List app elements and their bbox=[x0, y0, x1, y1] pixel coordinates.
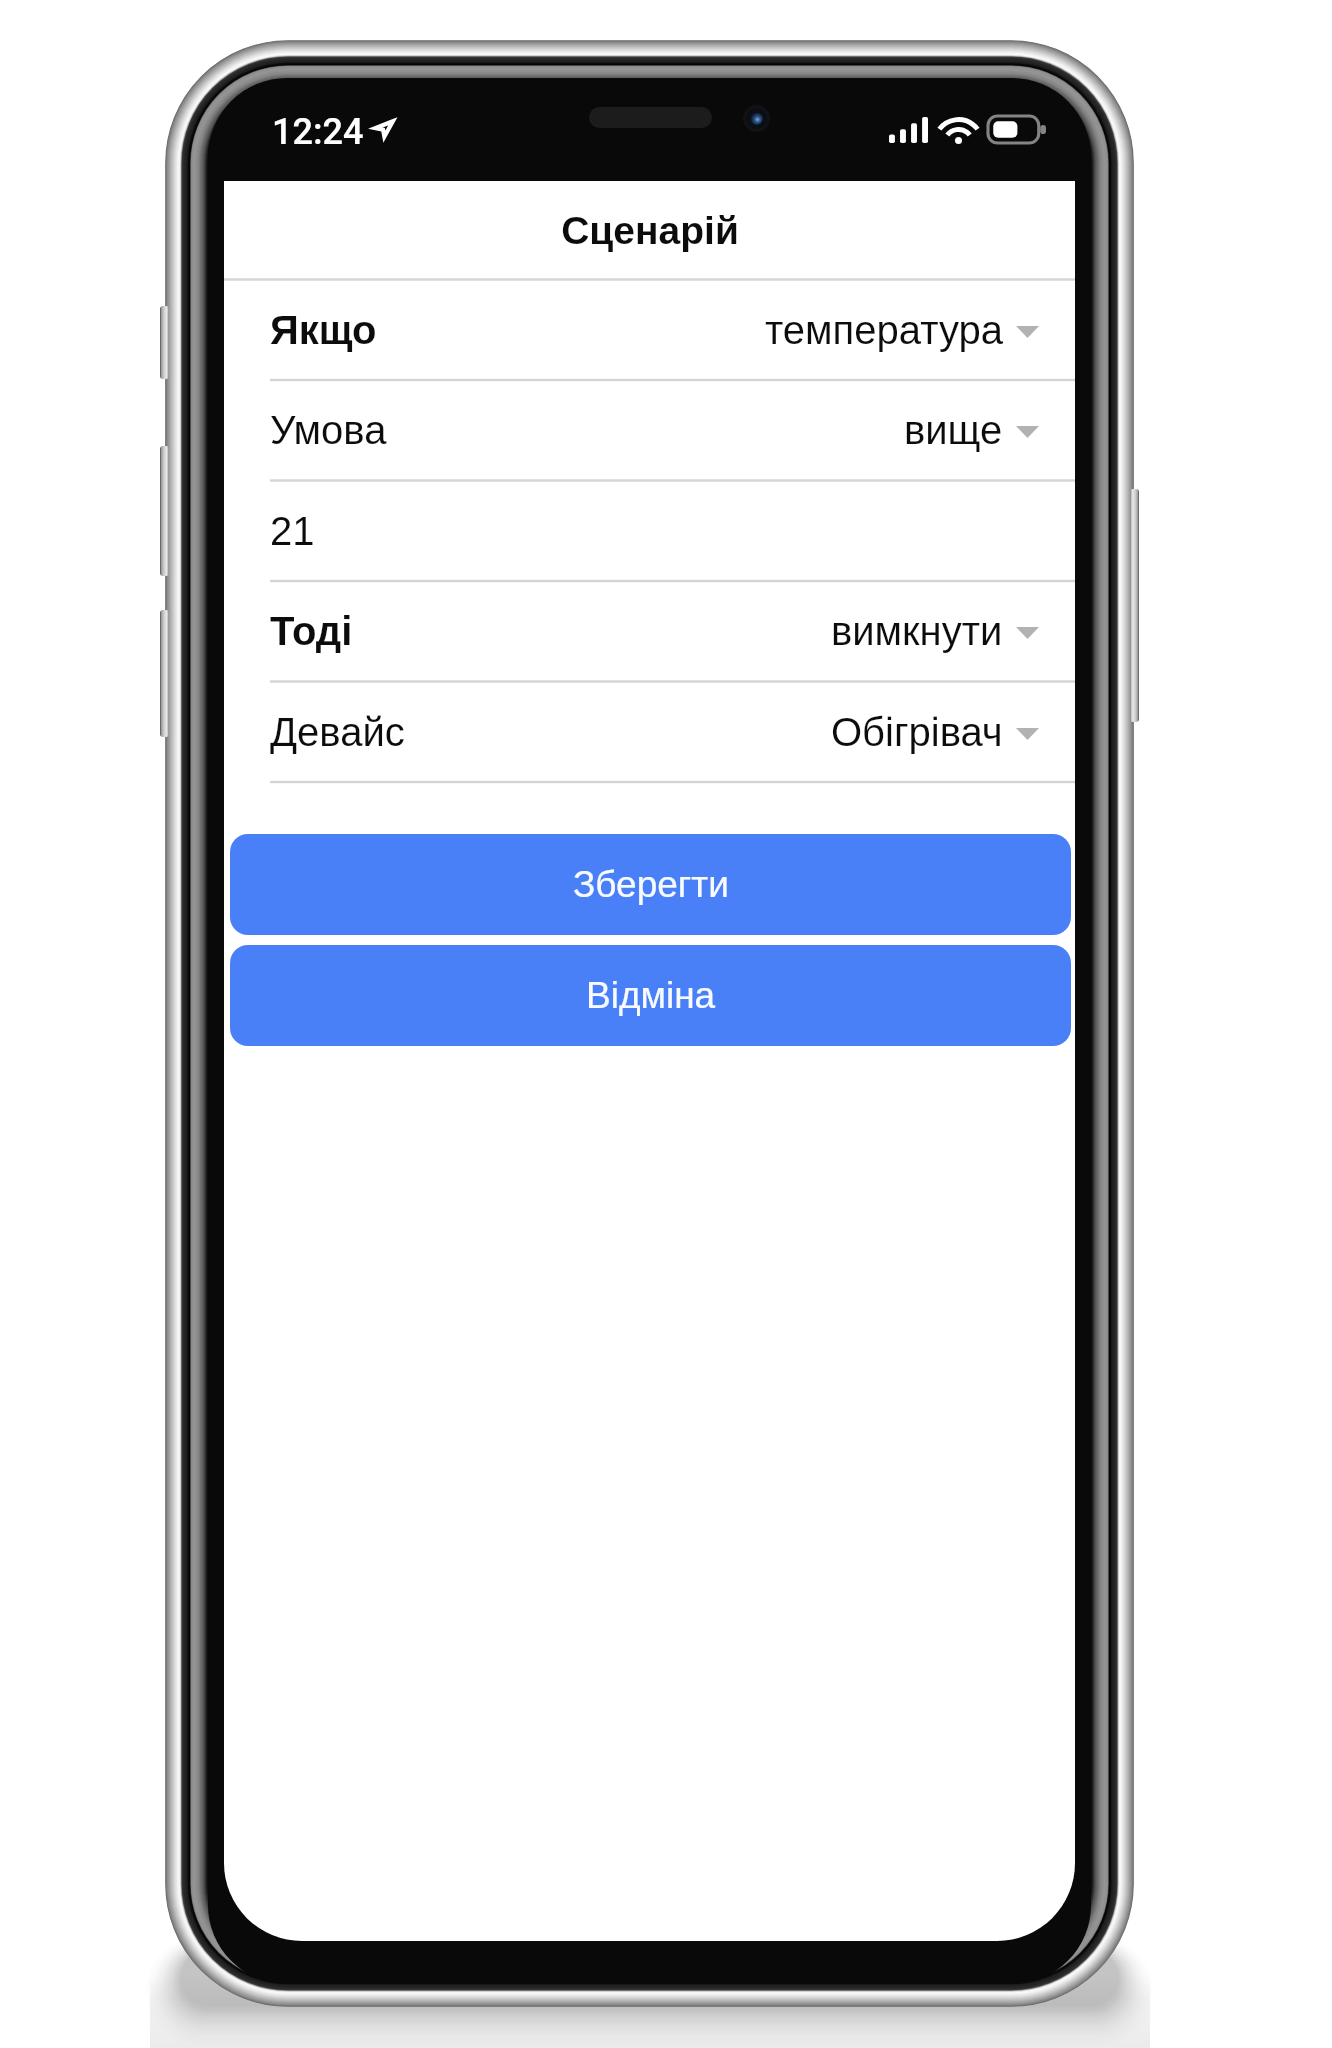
button[interactable]: Відміна bbox=[230, 945, 1071, 1046]
staticText: Якщо bbox=[270, 308, 377, 353]
button[interactable]: Умова bbox=[224, 380, 1075, 481]
staticText: Тоді bbox=[270, 609, 353, 654]
staticText: 12:24 bbox=[272, 111, 364, 153]
other: Location services bbox=[375, 121, 393, 137]
staticText: Відміна bbox=[586, 975, 716, 1016]
staticText: 21 bbox=[270, 509, 315, 554]
staticText: вище bbox=[904, 408, 1003, 453]
staticText: Девайс bbox=[270, 710, 405, 755]
staticText: Зберегти bbox=[573, 864, 729, 905]
button[interactable]: 21 bbox=[224, 481, 1075, 582]
staticText: температура bbox=[765, 308, 1003, 353]
staticText: Умова bbox=[270, 408, 387, 453]
staticText: вимкнути bbox=[831, 609, 1003, 654]
staticText: Обігрівач bbox=[831, 710, 1003, 755]
staticText: Сценарій bbox=[561, 209, 739, 253]
button[interactable]: Якщо bbox=[224, 280, 1075, 381]
button[interactable]: Зберегти bbox=[230, 834, 1071, 935]
button[interactable]: Тоді bbox=[224, 581, 1075, 682]
button[interactable]: Девайс bbox=[224, 682, 1075, 783]
